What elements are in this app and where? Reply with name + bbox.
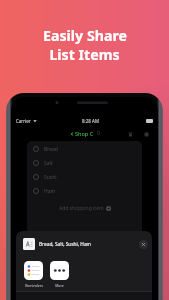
button[interactable]: Reminders: [24, 261, 43, 288]
button[interactable]: Share: [142, 130, 150, 138]
staticText: Add shopping item: [59, 205, 104, 212]
button[interactable]: More: [50, 261, 69, 288]
button[interactable]: Delete: [126, 130, 134, 138]
staticText: More: [55, 283, 64, 288]
button[interactable]: Salt: [33, 156, 142, 170]
staticText: Salt: [44, 160, 53, 167]
staticText: Ham: [44, 188, 56, 195]
staticText: Easily Share: [43, 26, 127, 45]
staticText: Sushi: [44, 174, 57, 181]
staticText: Shop C: [75, 130, 94, 137]
staticText: Reminders: [25, 283, 43, 288]
staticText: Carrier: [16, 118, 31, 124]
staticText: Bread, Salt, Sushi, Ham: [39, 241, 92, 248]
button[interactable]: Ham: [33, 184, 142, 198]
staticText: 0: [97, 130, 100, 137]
staticText: Bread: [44, 146, 58, 153]
button[interactable]: Bread: [33, 142, 142, 156]
button[interactable]: Add shopping item: [27, 203, 142, 213]
button[interactable]: Shop C: [70, 130, 100, 137]
button[interactable]: Close: [139, 240, 148, 249]
button[interactable]: Sushi: [33, 170, 142, 184]
staticText: List Items: [49, 45, 120, 64]
staticText: 8:28 AM: [82, 118, 100, 124]
